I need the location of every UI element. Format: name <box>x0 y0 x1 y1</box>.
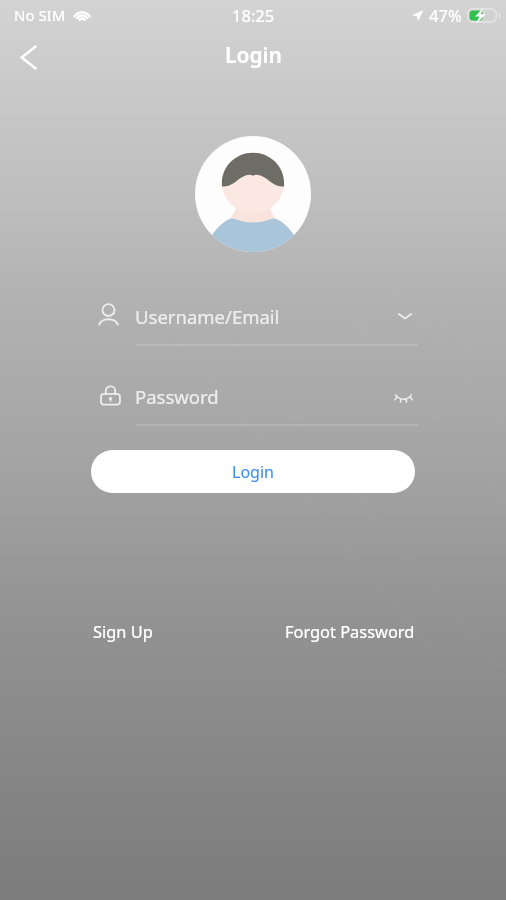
button[interactable]: Sign Up <box>89 615 157 647</box>
staticText: Password <box>135 384 392 409</box>
staticText: Login <box>232 461 274 483</box>
button[interactable]: Show account list <box>392 303 418 329</box>
staticText: Login <box>225 41 282 70</box>
button[interactable]: Show password <box>390 383 416 409</box>
staticText: 47% <box>429 4 462 26</box>
button[interactable]: Login <box>91 450 415 493</box>
staticText: Forgot Password <box>285 620 415 642</box>
staticText: 18:25 <box>232 4 275 26</box>
button[interactable]: Back <box>10 39 46 75</box>
staticText: No SIM <box>14 5 66 25</box>
staticText: Sign Up <box>93 620 153 642</box>
button[interactable]: Forgot Password <box>281 615 419 647</box>
staticText: Username/Email <box>135 304 392 329</box>
